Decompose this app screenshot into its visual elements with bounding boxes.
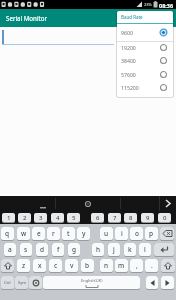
button[interactable]: 0 — [158, 213, 171, 223]
staticText: g — [72, 245, 77, 254]
button[interactable]: m — [115, 259, 128, 273]
button[interactable]: 9 — [141, 213, 154, 223]
button[interactable]: h — [92, 243, 104, 257]
staticText: q — [5, 229, 10, 238]
staticText: u — [104, 229, 109, 238]
staticText: 19200 — [121, 44, 136, 51]
button[interactable] — [161, 259, 175, 273]
staticText: z — [22, 261, 26, 270]
staticText: j — [113, 245, 115, 254]
button[interactable]: Ctrl — [1, 276, 14, 290]
button[interactable]: o — [130, 227, 143, 241]
button[interactable] — [0, 27, 176, 195]
button[interactable]: 9600 — [117, 26, 173, 39]
button[interactable]: t — [62, 227, 75, 241]
staticText: 57600 — [121, 71, 136, 78]
button[interactable]: l — [139, 243, 151, 257]
button[interactable]: y — [77, 227, 90, 241]
staticText: Baud Rate — [121, 14, 143, 20]
staticText: t — [67, 229, 70, 238]
staticText: k — [128, 245, 132, 254]
button[interactable]: u — [100, 227, 113, 241]
button[interactable]: . — [145, 259, 158, 273]
button[interactable] — [160, 227, 174, 241]
staticText: n — [104, 261, 109, 270]
staticText: 9600 — [121, 29, 133, 36]
staticText: Serial Monitor — [6, 14, 48, 22]
staticText: English(UK) — [81, 278, 103, 283]
staticText: 3 — [39, 214, 43, 222]
staticText: Sym — [18, 280, 26, 285]
staticText: l — [144, 245, 146, 254]
staticText: a — [8, 245, 12, 254]
staticText: d — [40, 245, 45, 254]
button[interactable]: 2 — [18, 213, 31, 223]
button[interactable]: 19200 — [117, 41, 173, 54]
button[interactable]: Sym — [15, 276, 28, 290]
button[interactable]: 6 — [91, 213, 104, 223]
button[interactable]: 4 — [51, 213, 64, 223]
staticText: 0 — [163, 214, 167, 222]
button[interactable] — [29, 276, 42, 290]
button[interactable]: 3 — [34, 213, 47, 223]
staticText: 115200 — [121, 84, 139, 91]
button[interactable]: 57600 — [117, 68, 173, 81]
button[interactable]: 1 — [2, 213, 15, 223]
staticText: y — [82, 229, 86, 238]
button[interactable]: , — [130, 259, 143, 273]
staticText: h — [96, 245, 101, 254]
button[interactable]: b — [81, 259, 94, 273]
staticText: 1 — [7, 214, 11, 222]
button[interactable] — [146, 276, 158, 290]
button[interactable] — [1, 259, 14, 273]
button[interactable]: s — [20, 243, 32, 257]
button[interactable]: English(UK) — [43, 276, 140, 290]
button[interactable]: 8 — [124, 213, 137, 223]
staticText: 38400 — [121, 57, 136, 64]
button[interactable]: x — [33, 259, 46, 273]
button[interactable]: r — [47, 227, 60, 241]
staticText: 4 — [56, 214, 60, 222]
button[interactable] — [154, 243, 174, 257]
button[interactable]: p — [145, 227, 158, 241]
staticText: w — [21, 229, 27, 238]
button[interactable]: c — [49, 259, 62, 273]
button[interactable]: 7 — [108, 213, 121, 223]
staticText: c — [54, 261, 58, 270]
button[interactable]: j — [108, 243, 120, 257]
button[interactable]: w — [17, 227, 30, 241]
button[interactable]: i — [115, 227, 128, 241]
button[interactable]: e — [32, 227, 45, 241]
staticText: 8 — [129, 214, 133, 222]
staticText: o — [135, 229, 139, 238]
staticText: 08:36 — [159, 2, 174, 9]
staticText: s — [24, 245, 28, 254]
staticText: 5 — [72, 214, 76, 222]
staticText: i — [121, 229, 123, 238]
button[interactable]: 115200 — [117, 81, 173, 94]
button[interactable]: g — [68, 243, 80, 257]
button[interactable]: f — [52, 243, 64, 257]
staticText: f — [57, 245, 60, 254]
staticText: 7 — [113, 214, 117, 222]
button[interactable]: v — [65, 259, 78, 273]
button[interactable]: 5 — [67, 213, 80, 223]
staticText: x — [38, 261, 42, 270]
staticText: v — [70, 261, 74, 270]
button[interactable]: k — [124, 243, 136, 257]
staticText: 9 — [146, 214, 150, 222]
staticText: p — [149, 229, 154, 238]
button[interactable]: q — [1, 227, 14, 241]
staticText: r — [52, 229, 55, 238]
button[interactable]: z — [17, 259, 30, 273]
staticText: , — [136, 261, 138, 270]
button[interactable] — [160, 196, 176, 211]
staticText: m — [118, 261, 125, 270]
staticText: 23% — [144, 2, 152, 7]
button[interactable]: d — [36, 243, 48, 257]
button[interactable]: 38400 — [117, 54, 173, 67]
staticText: Ctrl — [4, 280, 11, 285]
button[interactable]: a — [4, 243, 16, 257]
button[interactable]: n — [100, 259, 113, 273]
button[interactable] — [161, 276, 174, 290]
